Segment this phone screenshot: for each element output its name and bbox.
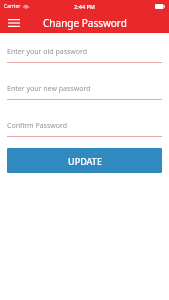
staticText: Carrier xyxy=(4,3,21,10)
staticText: Confirm Password xyxy=(7,121,68,131)
staticText: 2:44 PM xyxy=(74,3,95,10)
button[interactable]: UPDATE xyxy=(7,148,162,173)
button[interactable]: Enter your old password xyxy=(7,47,162,63)
staticText: Enter your new password xyxy=(7,84,91,94)
staticText: Change Password xyxy=(43,16,127,30)
button[interactable]: Confirm Password xyxy=(7,121,162,137)
button[interactable]: Open navigation menu xyxy=(6,15,22,31)
staticText: Enter your old password xyxy=(7,47,88,57)
button[interactable]: Enter your new password xyxy=(7,84,162,100)
staticText: UPDATE xyxy=(68,155,102,167)
